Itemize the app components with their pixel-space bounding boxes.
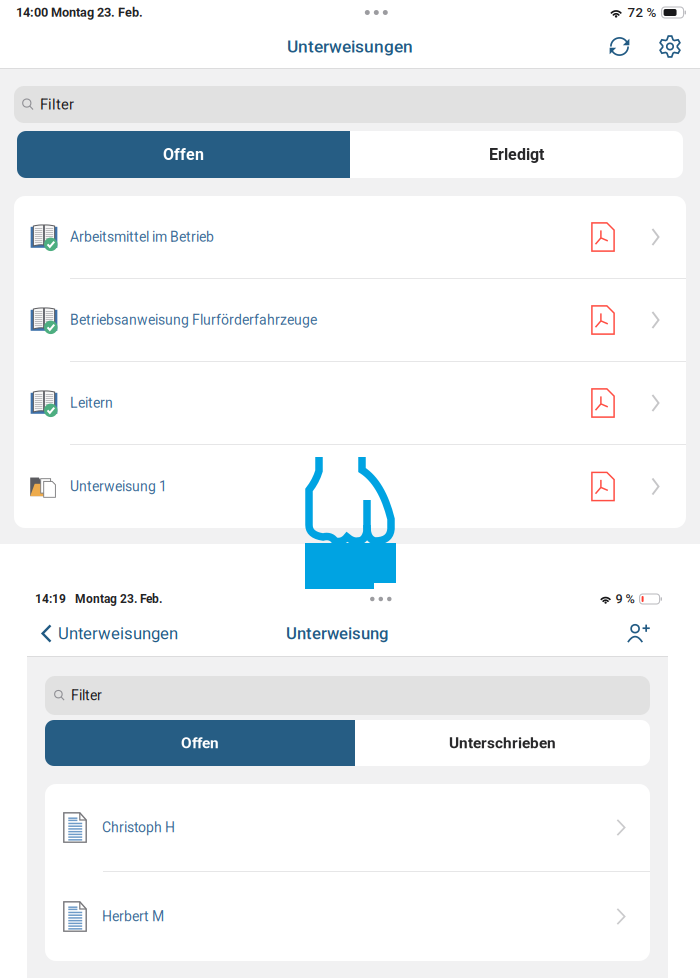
staticText: 14:19 Montag 23. Feb.	[35, 592, 162, 606]
button[interactable]: Betriebsanweisung Flurförderfahrzeuge	[14, 279, 686, 361]
button[interactable]: Filter	[14, 86, 686, 123]
staticText: Unterweisung 1	[70, 478, 167, 495]
button[interactable]: Christoph H	[45, 784, 650, 871]
staticText: Betriebsanweisung Flurförderfahrzeuge	[70, 312, 317, 328]
staticText: Unterweisungen	[287, 36, 413, 57]
staticText: 72 %	[628, 5, 657, 20]
button[interactable]: Filter	[45, 676, 650, 715]
staticText: Christoph H	[102, 819, 175, 836]
staticText: Unterschrieben	[449, 734, 556, 752]
button[interactable]: Unterschrieben	[355, 720, 650, 766]
staticText: 9 %	[616, 592, 635, 606]
button[interactable]: Offen	[17, 131, 350, 178]
button[interactable]: Herbert M	[45, 872, 650, 961]
staticText: Unterweisung	[286, 624, 388, 643]
staticText: Leitern	[70, 395, 113, 411]
button[interactable]: Person hinzufügen	[626, 621, 650, 645]
staticText: Offen	[181, 734, 219, 752]
staticText: Offen	[163, 145, 204, 164]
button[interactable]: Erledigt	[350, 131, 683, 178]
staticText: Unterweisungen	[58, 624, 178, 643]
staticText: Filter	[40, 96, 74, 113]
button[interactable]: Aktualisieren	[609, 36, 630, 57]
staticText: Herbert M	[102, 908, 164, 925]
button[interactable]: Unterweisungen	[41, 624, 178, 643]
button[interactable]: Offen	[45, 720, 355, 766]
button[interactable]: Arbeitsmittel im Betrieb	[14, 196, 686, 278]
staticText: 14:00 Montag 23. Feb.	[16, 5, 143, 20]
button[interactable]: Einstellungen	[659, 35, 681, 57]
button[interactable]: Leitern	[14, 362, 686, 444]
button[interactable]: Unterweisung 1	[14, 445, 686, 528]
staticText: Arbeitsmittel im Betrieb	[70, 229, 214, 245]
staticText: Erledigt	[489, 145, 544, 164]
staticText: Filter	[71, 687, 102, 704]
